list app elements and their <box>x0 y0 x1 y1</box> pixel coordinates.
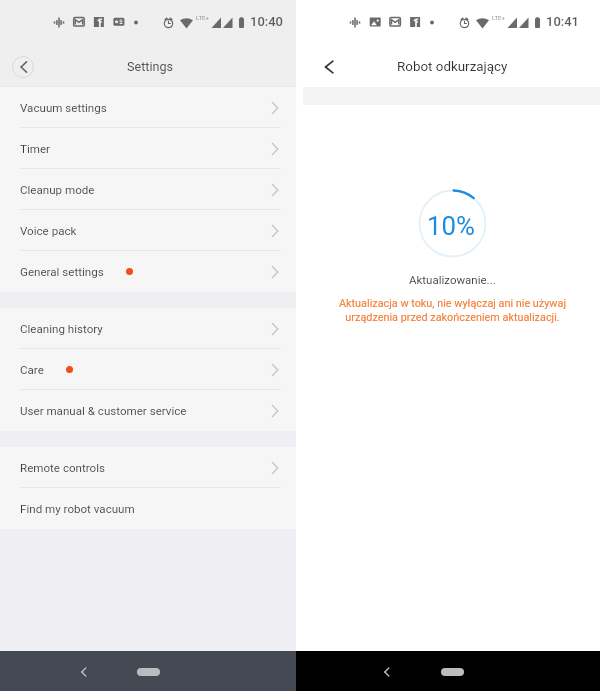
staticText: Care <box>20 363 44 377</box>
staticText: 10:40 <box>250 14 284 29</box>
staticText: LTE+ <box>492 14 505 21</box>
staticText: 10% <box>427 211 475 241</box>
staticText: Timer <box>20 142 50 156</box>
button[interactable]: Home <box>126 658 170 686</box>
button[interactable]: Care <box>0 349 296 390</box>
button[interactable]: Home <box>430 658 474 686</box>
staticText: Cleanup mode <box>20 183 95 197</box>
button[interactable]: Voice pack <box>0 210 296 251</box>
staticText: Aktualizowanie... <box>409 273 496 286</box>
staticText: Vacuum settings <box>20 101 107 115</box>
staticText: Remote controls <box>20 461 105 475</box>
button[interactable]: User manual & customer service <box>0 390 296 431</box>
staticText: Voice pack <box>20 224 77 238</box>
staticText: User manual & customer service <box>20 404 187 418</box>
button[interactable]: Back <box>71 660 95 684</box>
staticText: General settings <box>20 265 104 279</box>
button[interactable]: Cleanup mode <box>0 169 296 210</box>
button[interactable]: Cleaning history <box>0 308 296 349</box>
staticText: Settings <box>127 59 173 74</box>
button[interactable]: Vacuum settings <box>0 87 296 128</box>
button[interactable]: Timer <box>0 128 296 169</box>
button[interactable]: Remote controls <box>0 447 296 488</box>
button[interactable]: Back <box>317 55 341 79</box>
staticText: Cleaning history <box>20 322 103 336</box>
button[interactable]: Back <box>374 660 398 684</box>
staticText: LTE+ <box>196 14 209 21</box>
button[interactable]: Find my robot vacuum <box>0 488 296 529</box>
staticText: 10:41 <box>546 14 580 29</box>
staticText: Aktualizacja w toku, nie wyłączaj ani ni… <box>339 297 566 324</box>
staticText: Find my robot vacuum <box>20 502 135 516</box>
button[interactable]: Back <box>12 56 34 78</box>
button[interactable]: General settings <box>0 251 296 292</box>
staticText: Robot odkurzający <box>397 59 508 75</box>
